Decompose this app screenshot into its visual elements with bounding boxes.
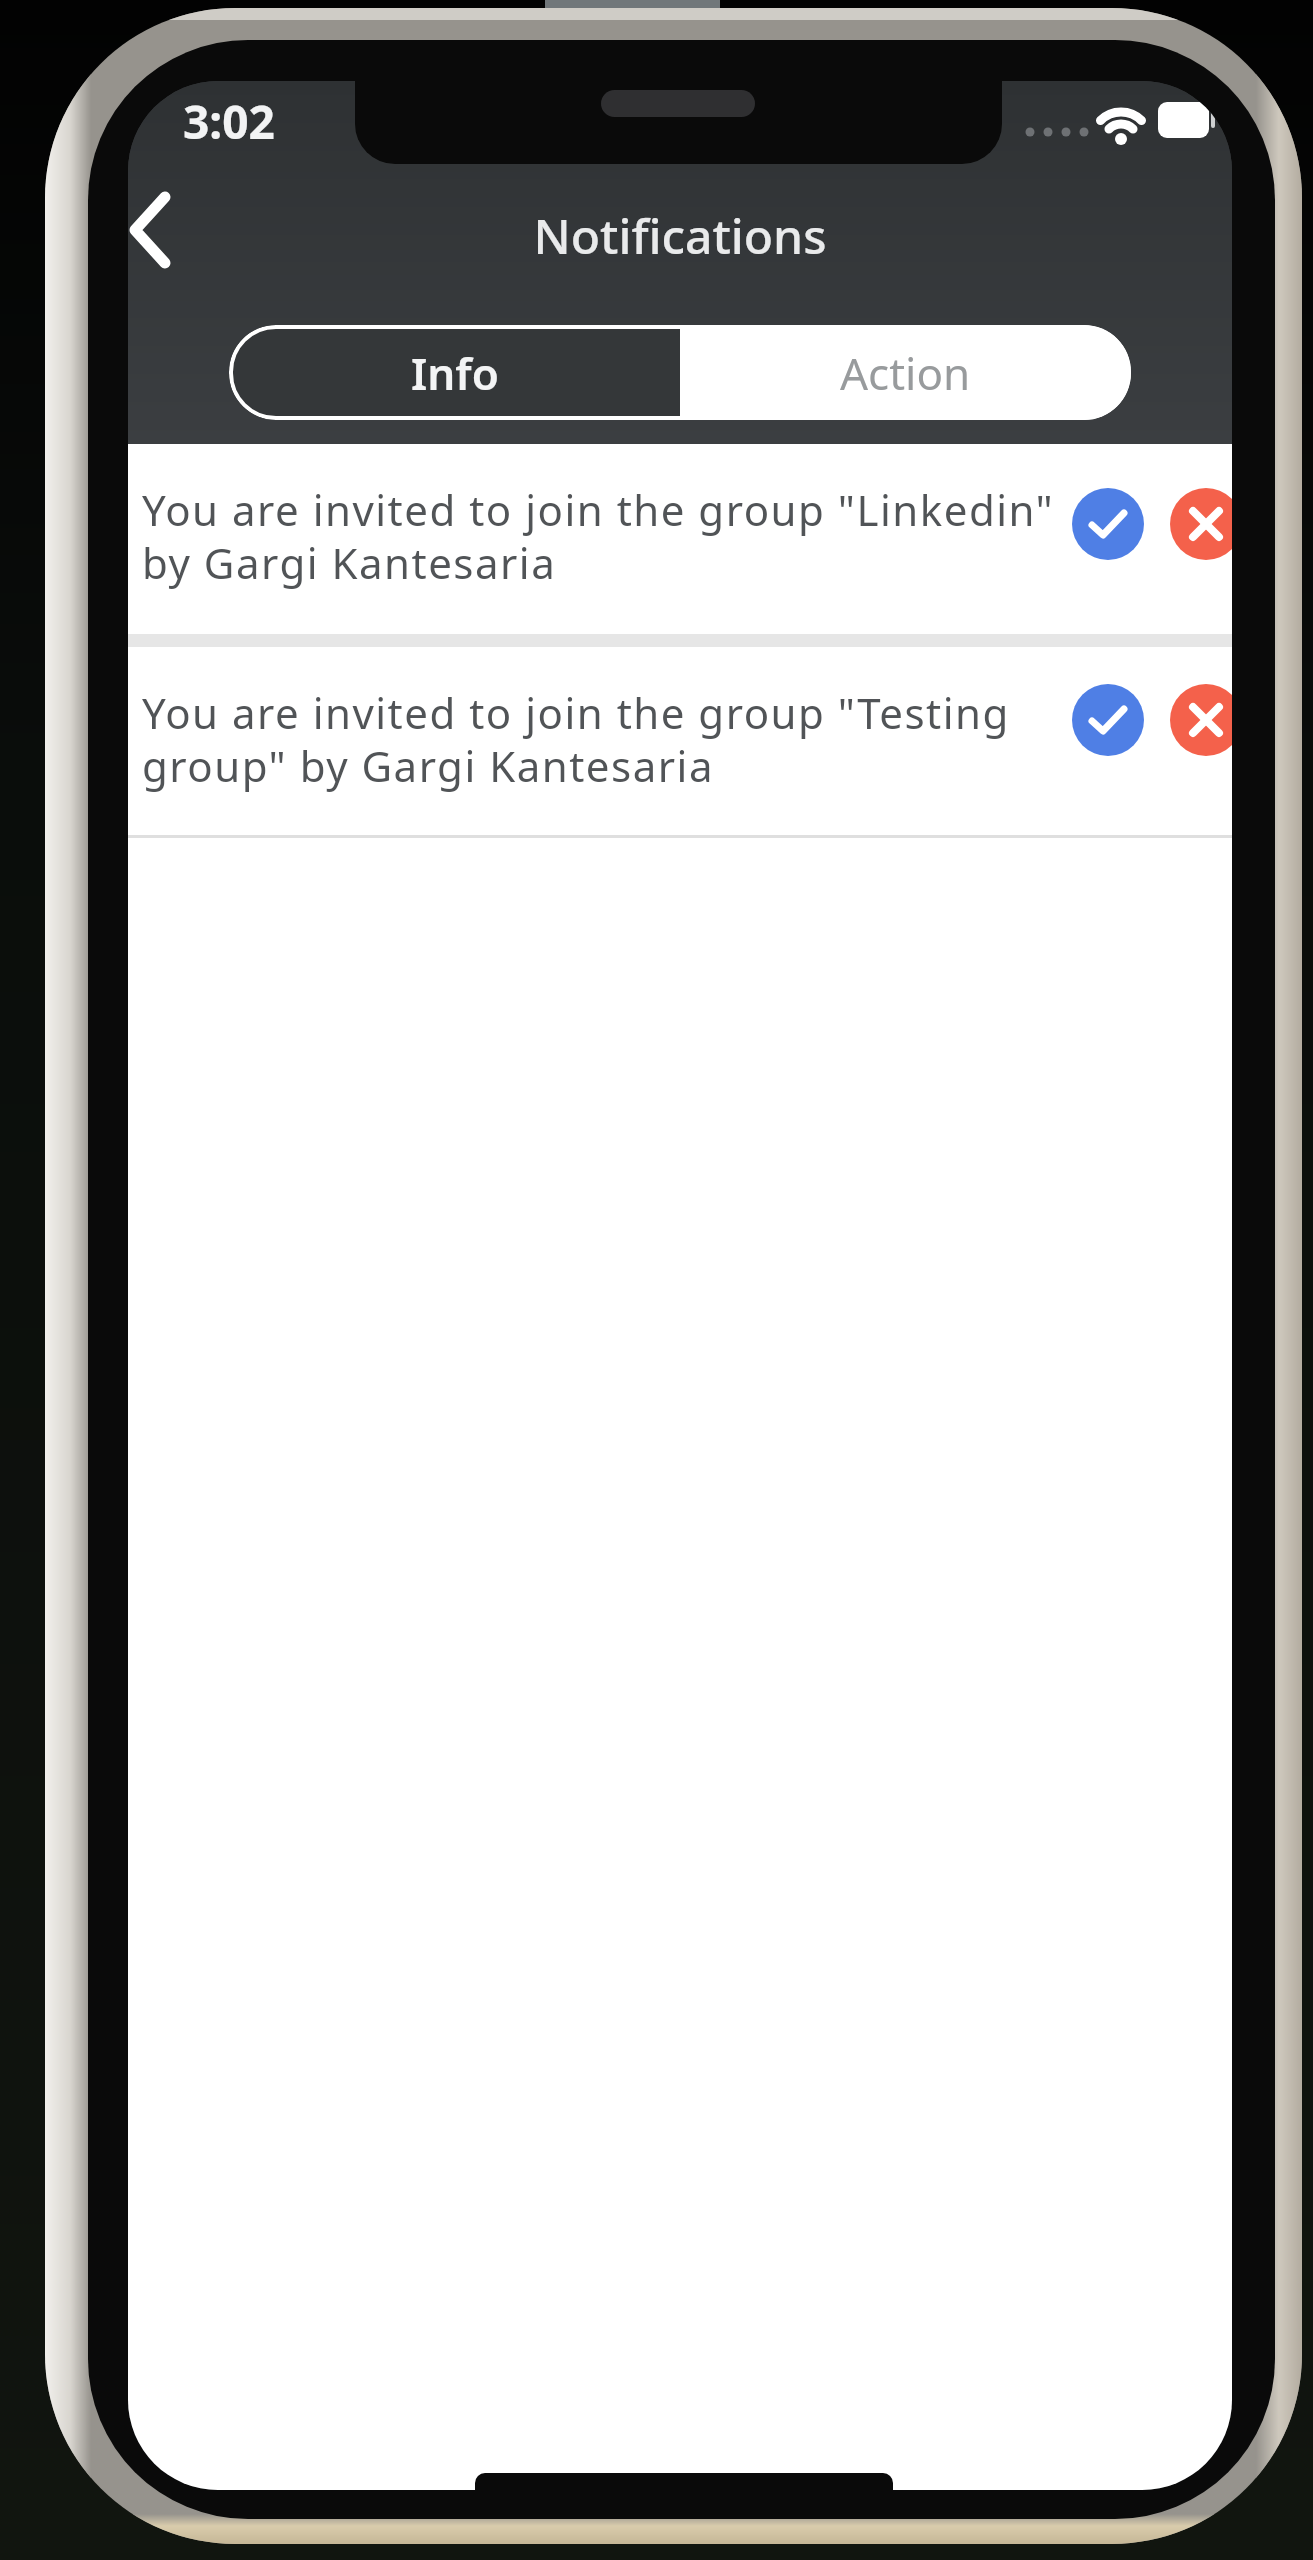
button[interactable]: You are invited to join the group "Linke… — [128, 444, 1232, 634]
button[interactable]: Info — [229, 325, 680, 420]
staticText: Notifications — [128, 203, 1232, 268]
button[interactable] — [1170, 488, 1232, 560]
button[interactable] — [1072, 684, 1144, 756]
staticText: 3:02 — [183, 90, 275, 153]
staticText: You are invited to join the group "Linke… — [142, 481, 1062, 591]
button[interactable] — [128, 171, 208, 279]
button[interactable] — [1072, 488, 1144, 560]
staticText: You are invited to join the group "Testi… — [142, 684, 1062, 794]
staticText: Info — [411, 343, 499, 403]
button[interactable]: Action — [680, 325, 1131, 420]
staticText: Action — [840, 343, 971, 403]
button[interactable] — [1170, 684, 1232, 756]
button[interactable]: You are invited to join the group "Testi… — [128, 647, 1232, 835]
